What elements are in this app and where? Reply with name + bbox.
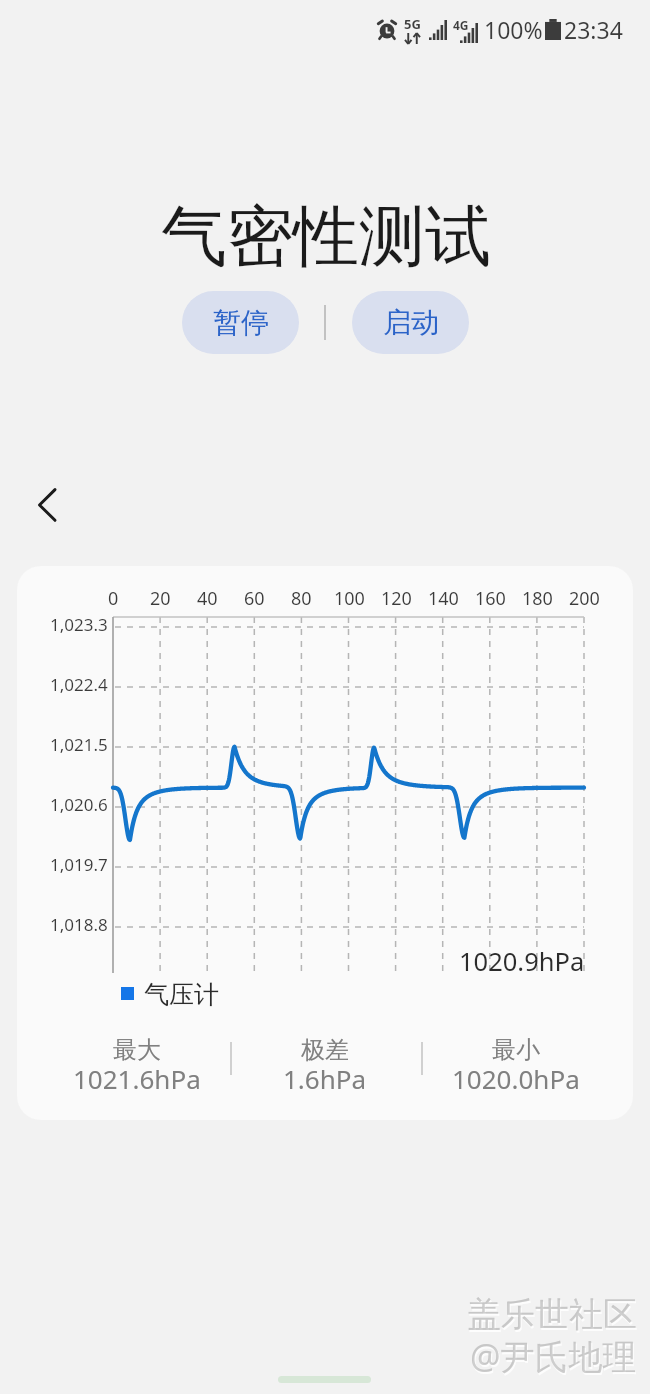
staticText: 1,023.3 — [50, 613, 108, 636]
staticText: 40 — [197, 586, 218, 611]
staticText: 120 — [381, 586, 412, 611]
staticText: 暂停 — [213, 305, 269, 340]
staticText: 1020.0hPa — [452, 1061, 580, 1096]
staticText: 启动 — [383, 305, 439, 340]
staticText: 1,021.5 — [50, 733, 108, 756]
staticText: 1,020.6 — [50, 793, 108, 816]
staticText: 180 — [522, 586, 553, 611]
staticText: 最小 — [492, 1035, 540, 1065]
staticText: 极差 — [301, 1035, 349, 1065]
staticText: 气密性测试 — [161, 195, 491, 278]
button[interactable]: 暂停 — [182, 291, 299, 354]
staticText: 80 — [291, 586, 312, 611]
staticText: 200 — [569, 586, 600, 611]
staticText: 4G — [453, 17, 469, 33]
button[interactable]: Back — [19, 477, 71, 529]
staticText: 最大 — [113, 1035, 161, 1065]
staticText: 60 — [244, 586, 265, 611]
staticText: 20 — [150, 586, 171, 611]
staticText: 1.6hPa — [283, 1061, 367, 1096]
staticText: @尹氏地理 — [470, 1333, 637, 1379]
staticText: 100 — [334, 586, 365, 611]
staticText: 气压计 — [144, 979, 219, 1010]
staticText: 盖乐世社区 — [468, 1295, 638, 1338]
staticText: 23:34 — [564, 14, 623, 45]
staticText: 140 — [428, 586, 459, 611]
staticText: 1,022.4 — [50, 673, 108, 696]
staticText: 1020.9hPa — [459, 944, 585, 979]
staticText: 160 — [475, 586, 506, 611]
staticText: 100% — [484, 14, 543, 45]
staticText: 1,019.7 — [50, 853, 108, 876]
button[interactable]: 启动 — [352, 291, 469, 354]
staticText: 1,018.8 — [50, 913, 108, 936]
staticText: 盖乐世社区 — [467, 1293, 637, 1336]
staticText: 0 — [108, 586, 119, 611]
staticText: 1021.6hPa — [73, 1061, 201, 1096]
staticText: 5G — [404, 15, 421, 33]
staticText: @尹氏地理 — [471, 1335, 638, 1381]
